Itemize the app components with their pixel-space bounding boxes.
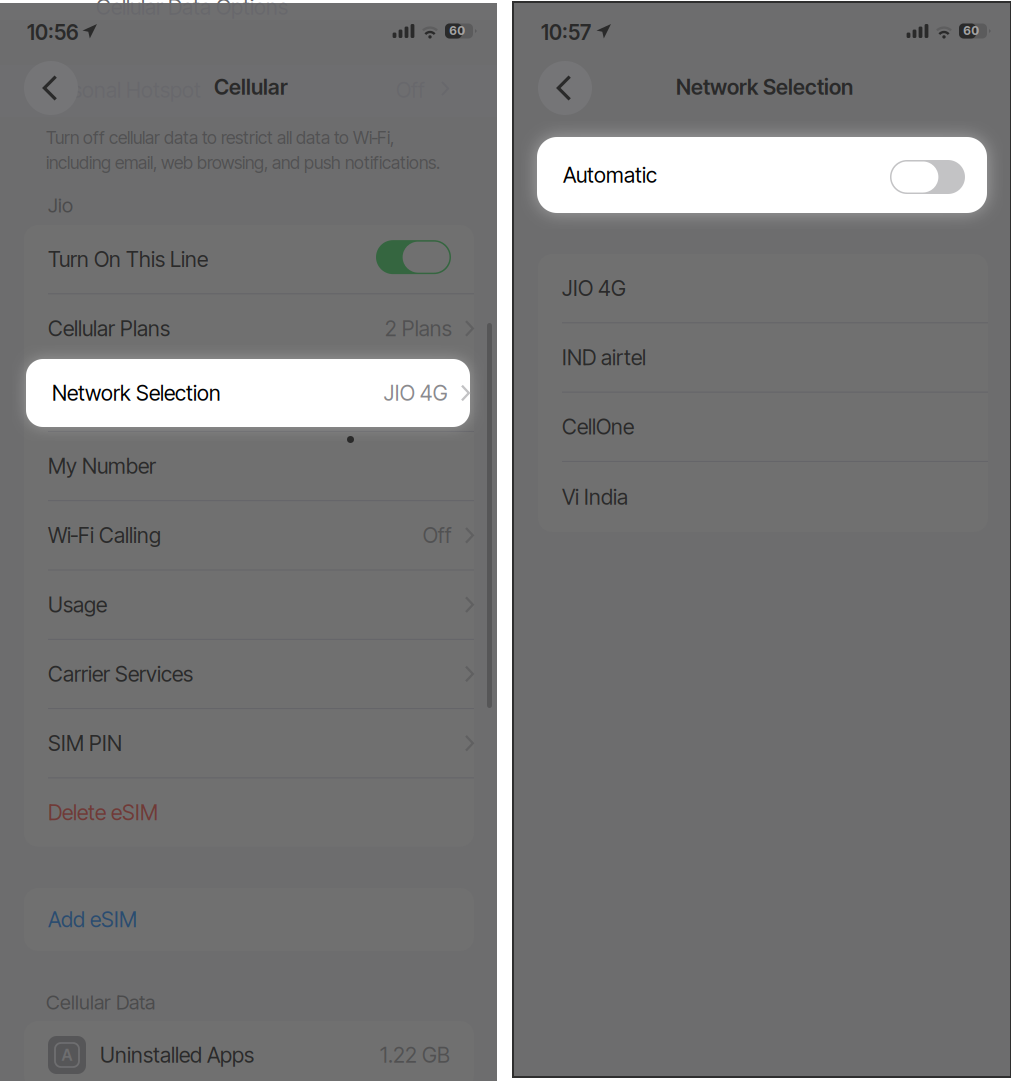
button[interactable]: Network Selection [26, 359, 470, 427]
staticText: Uninstalled Apps [100, 1042, 254, 1068]
staticText: Cellular Plans [48, 315, 170, 341]
button[interactable]: IND airtel [538, 323, 988, 392]
button[interactable]: JIO 4G [538, 254, 988, 322]
staticText: Delete eSIM [48, 800, 158, 825]
staticText: Cellular Data Options [96, 0, 288, 20]
button[interactable]: My Number [24, 432, 474, 500]
staticText: Vi India [562, 484, 628, 510]
staticText: Automatic [563, 162, 657, 188]
staticText: 60 [963, 23, 979, 38]
button[interactable]: Vi India [538, 462, 988, 532]
staticText: including email, web browsing, and push … [46, 152, 440, 173]
staticText: Off [423, 522, 452, 548]
staticText: Cellular Data [46, 990, 155, 1014]
button[interactable]: Back [538, 61, 592, 115]
staticText: Usage [48, 592, 107, 617]
staticText: Cellular [214, 74, 288, 100]
staticText: Network Selection [52, 380, 221, 406]
button[interactable]: Usage [24, 570, 474, 639]
staticText: JIO 4G [384, 380, 448, 406]
staticText: Wi‑Fi Calling [48, 522, 161, 548]
staticText: 10:56 [27, 20, 79, 45]
staticText: Carrier Services [48, 661, 193, 687]
button[interactable]: Add eSIM [24, 888, 474, 951]
staticText: Add eSIM [48, 907, 137, 932]
staticText: JIO 4G [562, 275, 626, 301]
button[interactable]: Carrier Services [24, 640, 474, 708]
button[interactable]: A [24, 1021, 474, 1081]
staticText: IND airtel [562, 344, 646, 370]
staticText: Jio [48, 193, 73, 217]
staticText: 2 Plans [385, 315, 452, 341]
staticText: 10:57 [541, 20, 591, 45]
button[interactable]: SIM PIN [24, 709, 474, 777]
staticText: Turn off cellular data to restrict all d… [46, 127, 394, 148]
button[interactable]: Back [24, 61, 78, 115]
button[interactable]: Wi‑Fi Calling [24, 501, 474, 569]
button[interactable]: Cellular Plans [24, 294, 474, 363]
staticText: My Number [48, 453, 156, 479]
button[interactable]: Turn On This Line [24, 225, 474, 293]
staticText: 60 [449, 23, 465, 38]
staticText: SIM PIN [48, 730, 122, 756]
staticText: Turn On This Line [48, 246, 208, 272]
button[interactable]: Automatic [537, 137, 987, 213]
staticText: 1.22 GB [380, 1042, 450, 1068]
button[interactable]: CellOne [538, 393, 988, 461]
staticText: A [61, 1045, 72, 1065]
staticText: CellOne [562, 414, 634, 440]
button[interactable]: Delete eSIM [24, 778, 474, 847]
staticText: Network Selection [676, 74, 853, 100]
